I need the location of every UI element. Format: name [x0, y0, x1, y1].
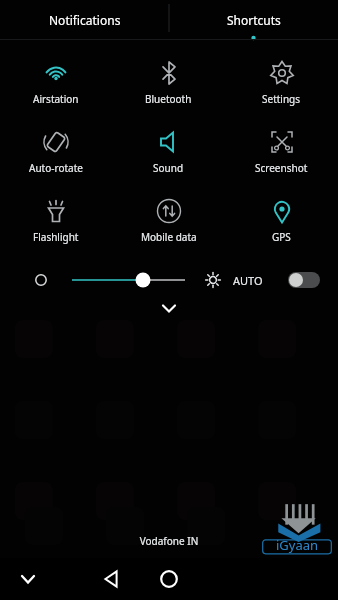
button[interactable]: Mobile data — [112, 191, 225, 251]
button[interactable]: Flashlight — [0, 191, 112, 251]
button[interactable]: GPS — [225, 191, 338, 251]
staticText: GPS — [272, 230, 291, 244]
staticText: AUTO — [233, 273, 263, 288]
button[interactable]: Notifications — [0, 0, 169, 40]
button[interactable]: Sound — [112, 122, 225, 182]
staticText: Notifications — [49, 12, 121, 28]
button[interactable]: Hide — [8, 559, 48, 599]
button[interactable]: Bluetooth — [112, 53, 225, 113]
button[interactable]: Home — [147, 558, 191, 600]
button[interactable]: Expand — [0, 297, 338, 319]
staticText: Screenshot — [255, 161, 308, 175]
staticText: Airstation — [33, 92, 79, 106]
staticText: iGyaan — [276, 536, 319, 554]
staticText: Sound — [153, 161, 184, 175]
button[interactable]: Screenshot — [225, 122, 338, 182]
button[interactable]: Settings — [225, 53, 338, 113]
button[interactable]: Shortcuts — [169, 0, 338, 40]
staticText: Vodafone IN — [0, 534, 338, 548]
staticText: Auto-rotate — [29, 161, 83, 175]
button[interactable]: Auto brightness — [288, 272, 320, 288]
staticText: Settings — [262, 92, 301, 106]
staticText: Shortcuts — [227, 12, 281, 28]
button[interactable]: Airstation — [0, 53, 112, 113]
staticText: Mobile data — [141, 230, 197, 244]
button[interactable]: Auto-rotate — [0, 122, 112, 182]
button[interactable]: Back — [89, 558, 133, 600]
staticText: Bluetooth — [145, 92, 192, 106]
staticText: Flashlight — [33, 230, 79, 244]
